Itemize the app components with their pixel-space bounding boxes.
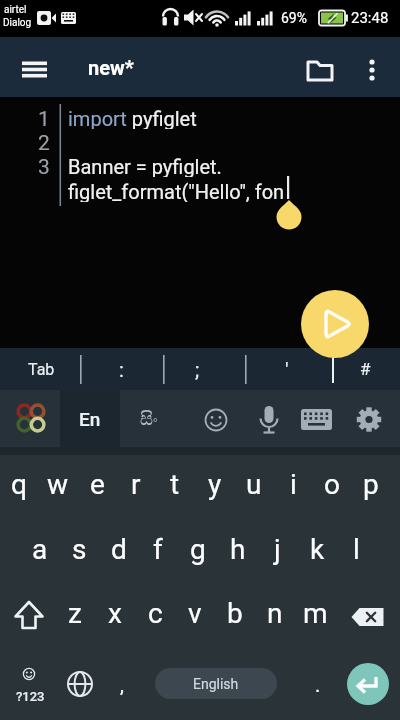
staticText: w xyxy=(47,468,69,501)
staticText: English xyxy=(193,676,239,692)
button[interactable]: ; xyxy=(166,351,228,387)
button[interactable] xyxy=(248,398,290,442)
button[interactable]: # xyxy=(334,351,396,387)
button[interactable]: : xyxy=(90,351,152,387)
staticText: ' xyxy=(285,358,289,381)
button[interactable] xyxy=(196,398,238,442)
button[interactable] xyxy=(296,398,338,442)
button[interactable] xyxy=(6,588,54,640)
button[interactable]: j xyxy=(258,518,296,580)
button[interactable]: i xyxy=(274,453,312,515)
button[interactable] xyxy=(58,660,102,708)
button[interactable]: q xyxy=(0,453,38,515)
staticText: y xyxy=(208,468,222,501)
button[interactable]: f xyxy=(139,518,177,580)
staticText: g xyxy=(190,533,206,566)
staticText: airtel xyxy=(4,4,27,16)
button[interactable]: c xyxy=(136,582,174,644)
staticText: f xyxy=(153,533,163,566)
button[interactable]: e xyxy=(78,453,116,515)
staticText: e xyxy=(90,468,105,501)
button[interactable]: v xyxy=(176,582,214,644)
button[interactable]: r xyxy=(117,453,155,515)
button[interactable]: ?123 xyxy=(6,652,54,712)
staticText: Tab xyxy=(28,360,55,379)
staticText: s xyxy=(72,533,87,566)
button[interactable]: . xyxy=(302,664,334,704)
button[interactable]: y xyxy=(196,453,234,515)
button[interactable]: u xyxy=(235,453,273,515)
staticText: t xyxy=(170,468,180,501)
staticText: ; xyxy=(195,358,200,381)
button[interactable]: s xyxy=(60,518,98,580)
button[interactable]: n xyxy=(256,582,294,644)
button[interactable]: x xyxy=(96,582,134,644)
staticText: d xyxy=(111,533,127,566)
staticText: h xyxy=(230,533,246,566)
staticText: import pyfiglet xyxy=(68,107,197,129)
staticText: c xyxy=(148,597,163,630)
staticText: figlet_format("Hello", fon xyxy=(68,180,285,202)
staticText: Dialog xyxy=(3,17,32,29)
button[interactable] xyxy=(301,290,369,358)
button[interactable] xyxy=(300,52,340,88)
staticText: k xyxy=(310,533,325,566)
staticText: u xyxy=(246,468,262,501)
staticText: : xyxy=(119,358,124,381)
button[interactable]: p xyxy=(352,453,390,515)
staticText: z xyxy=(68,597,82,630)
staticText: 3 xyxy=(38,155,50,177)
staticText: r xyxy=(131,468,141,501)
button[interactable] xyxy=(358,52,388,88)
button[interactable]: g xyxy=(179,518,217,580)
staticText: p xyxy=(363,468,379,501)
button[interactable]: w xyxy=(39,453,77,515)
staticText: x xyxy=(108,597,122,630)
staticText: 69% xyxy=(281,10,307,26)
button[interactable] xyxy=(346,588,394,640)
button[interactable]: Tab xyxy=(10,351,72,387)
staticText: new* xyxy=(88,56,134,79)
staticText: a xyxy=(32,533,48,566)
staticText: n xyxy=(267,597,283,630)
staticText: j xyxy=(274,533,281,566)
button[interactable] xyxy=(8,396,54,442)
button[interactable]: k xyxy=(298,518,336,580)
staticText: l xyxy=(353,533,360,566)
button[interactable]: o xyxy=(313,453,351,515)
staticText: , xyxy=(120,673,124,696)
button[interactable]: En xyxy=(60,390,120,447)
staticText: ?123 xyxy=(16,689,45,704)
staticText: . xyxy=(315,673,321,696)
staticText: සිං xyxy=(140,411,158,429)
staticText: En xyxy=(79,408,101,430)
staticText: 23:48 xyxy=(351,9,389,27)
button[interactable] xyxy=(12,52,58,88)
button[interactable]: English xyxy=(155,668,277,699)
button[interactable] xyxy=(348,398,390,442)
button[interactable]: z xyxy=(56,582,94,644)
staticText: Banner = pyfiglet. xyxy=(68,155,222,177)
button[interactable]: t xyxy=(156,453,194,515)
button[interactable]: h xyxy=(219,518,257,580)
staticText: o xyxy=(324,468,340,501)
staticText: m xyxy=(303,597,328,630)
staticText: i xyxy=(290,468,297,501)
button[interactable]: d xyxy=(100,518,138,580)
button[interactable]: ' xyxy=(256,351,318,387)
staticText: v xyxy=(188,597,202,630)
button[interactable]: a xyxy=(21,518,59,580)
button[interactable]: m xyxy=(296,582,334,644)
staticText: b xyxy=(227,597,243,630)
button[interactable]: l xyxy=(337,518,375,580)
staticText: q xyxy=(11,468,27,501)
staticText: 2 xyxy=(38,131,50,153)
button[interactable]: , xyxy=(106,664,138,704)
staticText: # xyxy=(360,359,371,379)
button[interactable]: b xyxy=(216,582,254,644)
button[interactable]: සිං xyxy=(120,390,178,449)
button[interactable] xyxy=(347,663,389,705)
staticText: 1 xyxy=(38,107,50,129)
